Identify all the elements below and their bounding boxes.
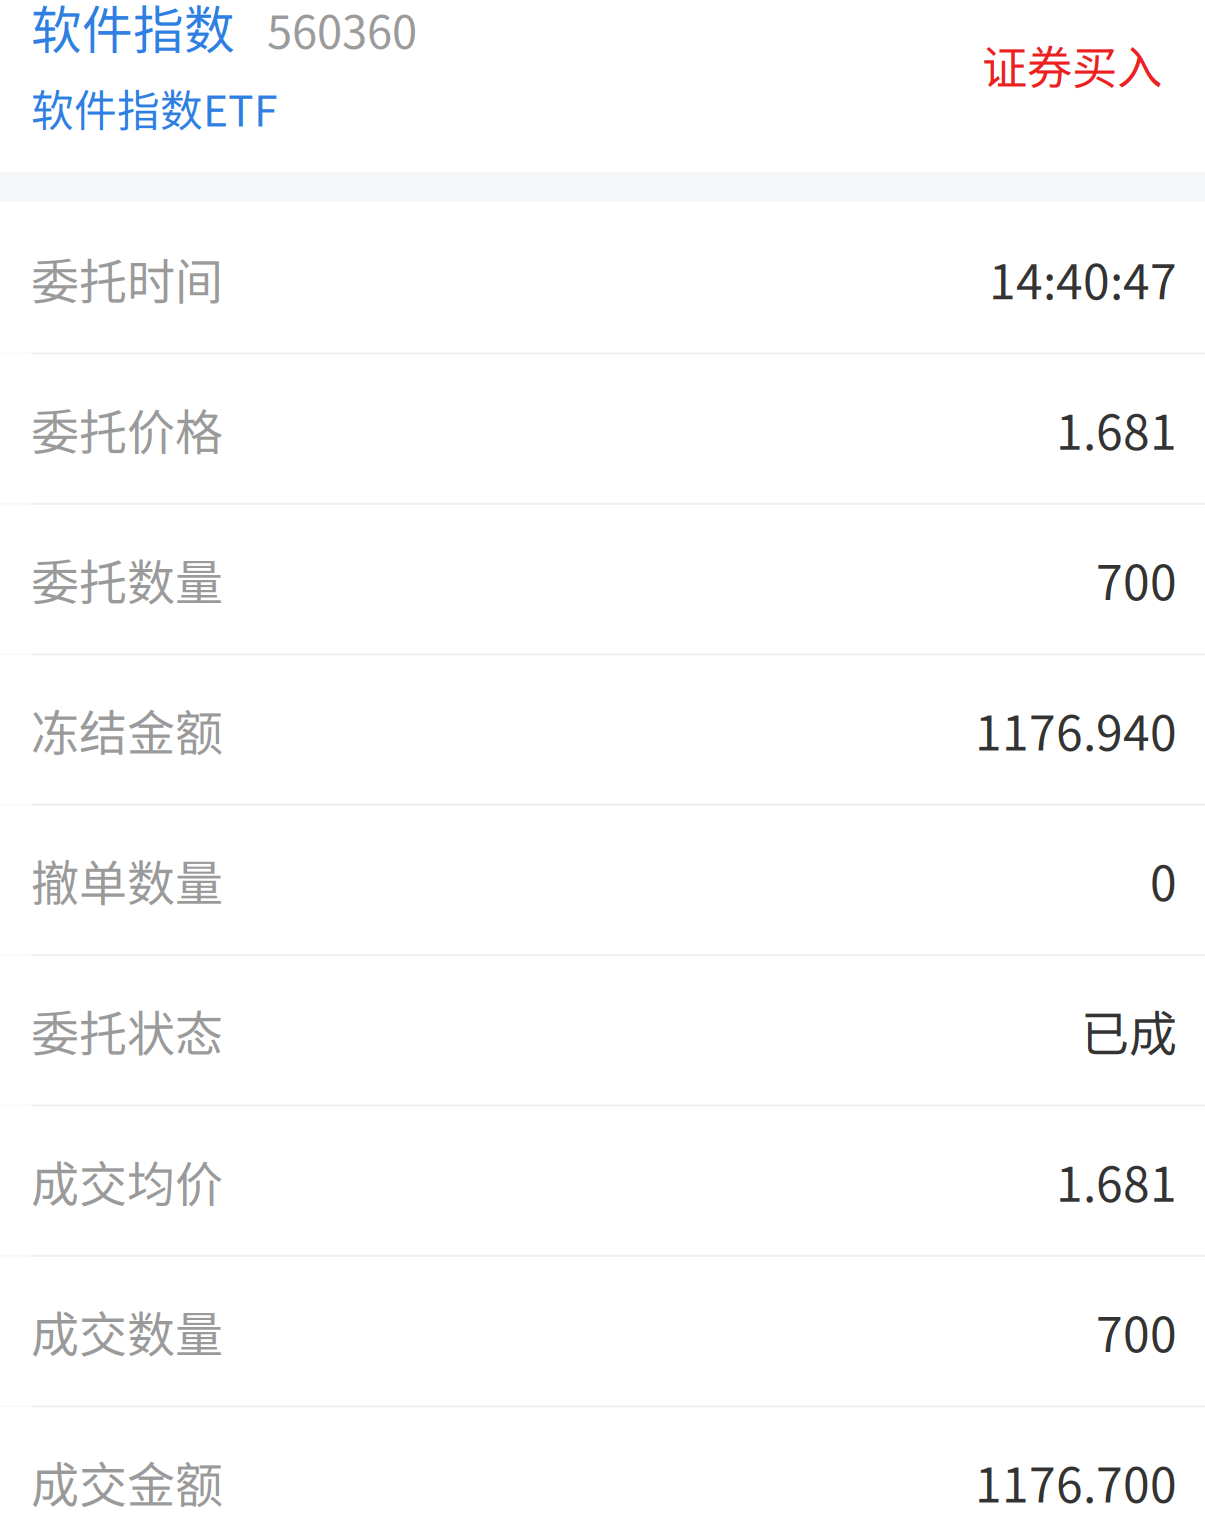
button[interactable]: 冻结金额 xyxy=(0,655,1205,804)
button[interactable]: 撤单数量 xyxy=(0,806,1205,954)
staticText: 委托时间 xyxy=(31,243,223,313)
staticText: 成交数量 xyxy=(31,1296,223,1366)
staticText: 已成 xyxy=(1081,995,1177,1065)
staticText: 1176.700 xyxy=(975,1447,1177,1516)
button[interactable]: 成交金额 xyxy=(0,1407,1205,1533)
staticText: 成交均价 xyxy=(31,1146,223,1215)
button[interactable]: 委托数量 xyxy=(0,505,1205,653)
button[interactable]: 委托价格 xyxy=(0,354,1205,503)
staticText: 1176.940 xyxy=(975,695,1177,764)
staticText: 成交金额 xyxy=(31,1447,223,1516)
button[interactable]: 软件指数ETF xyxy=(31,77,278,139)
staticText: 软件指数 xyxy=(31,0,235,63)
staticText: 700 xyxy=(1096,1296,1177,1366)
staticText: 1.681 xyxy=(1056,394,1177,463)
staticText: 0 xyxy=(1150,845,1177,915)
staticText: 冻结金额 xyxy=(31,695,223,764)
staticText: 证券买入 xyxy=(982,32,1162,98)
staticText: 撤单数量 xyxy=(31,845,223,915)
button[interactable]: 成交数量 xyxy=(0,1257,1205,1405)
button[interactable]: 成交均价 xyxy=(0,1106,1205,1255)
button[interactable]: 委托状态 xyxy=(0,956,1205,1104)
staticText: 560360 xyxy=(267,0,417,62)
staticText: 1.681 xyxy=(1056,1146,1177,1215)
staticText: 委托价格 xyxy=(31,394,223,463)
staticText: 软件指数ETF xyxy=(31,77,278,139)
button[interactable]: 委托时间 xyxy=(0,204,1205,352)
staticText: 委托状态 xyxy=(31,995,223,1065)
staticText: 委托数量 xyxy=(31,544,223,614)
staticText: 700 xyxy=(1096,544,1177,614)
staticText: 14:40:47 xyxy=(989,243,1177,313)
button[interactable]: 软件指数 xyxy=(31,0,235,63)
